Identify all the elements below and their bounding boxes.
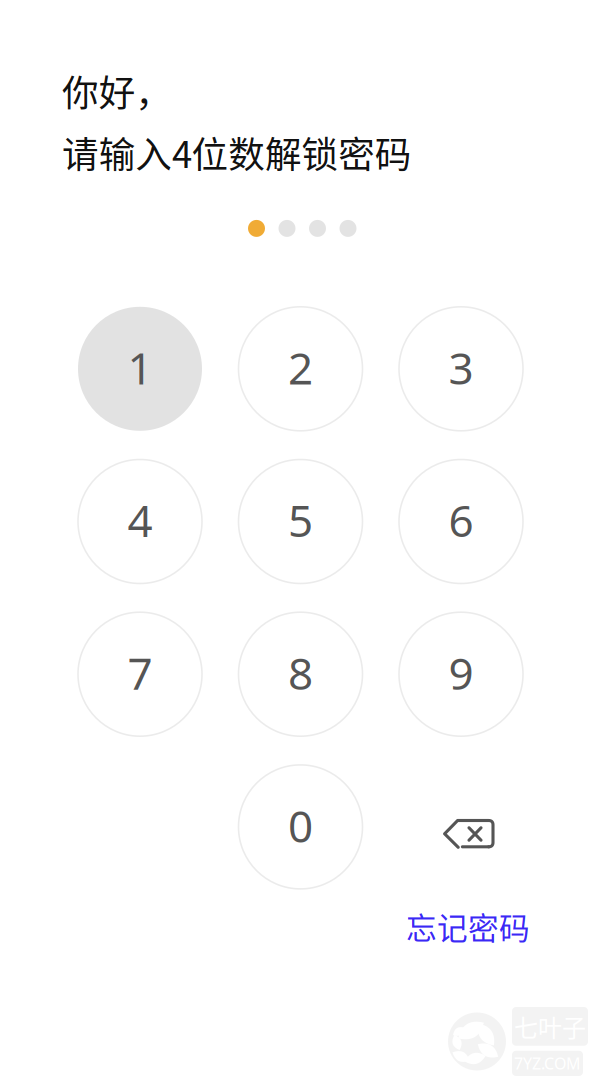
button[interactable]: 9 <box>399 612 523 736</box>
staticText: 2 <box>288 338 313 396</box>
staticText: 1 <box>127 338 152 396</box>
button[interactable]: 忘记密码 <box>406 904 530 948</box>
button[interactable]: Delete <box>399 765 523 889</box>
button[interactable]: 6 <box>399 459 523 583</box>
button[interactable]: 8 <box>238 612 362 736</box>
staticText: 请输入4位数解锁密码 <box>62 125 412 178</box>
staticText: 你好， <box>62 64 172 117</box>
staticText: 忘记密码 <box>406 904 530 948</box>
staticText: 4 <box>127 491 152 549</box>
staticText: 7 <box>127 643 152 702</box>
button[interactable]: 0 <box>238 765 362 889</box>
staticText: 3 <box>448 338 473 396</box>
staticText: 七叶子 <box>514 1009 586 1044</box>
button[interactable]: 1 <box>78 307 202 431</box>
staticText: 5 <box>288 491 313 549</box>
staticText: 9 <box>448 643 473 702</box>
button[interactable]: 7 <box>78 612 202 736</box>
button[interactable]: 4 <box>78 459 202 583</box>
button[interactable]: 2 <box>238 307 362 431</box>
staticText: 7YZ.COM <box>514 1053 581 1074</box>
staticText: 0 <box>288 796 313 855</box>
staticText: 6 <box>448 491 473 549</box>
staticText: 8 <box>288 643 313 702</box>
button[interactable]: 5 <box>238 459 362 583</box>
button[interactable]: 3 <box>399 307 523 431</box>
